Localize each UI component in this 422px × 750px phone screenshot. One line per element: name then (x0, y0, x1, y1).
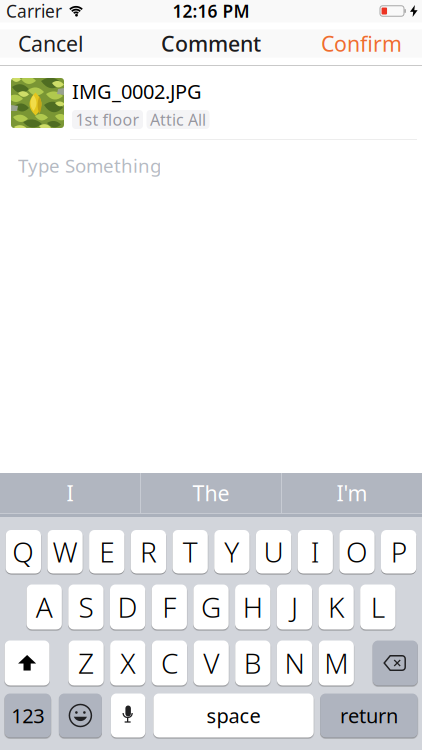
button[interactable]: X (110, 640, 145, 685)
button[interactable]: I (298, 530, 333, 573)
button[interactable]: N (277, 640, 312, 685)
staticText: Z (78, 644, 94, 682)
staticText: M (324, 644, 348, 682)
staticText: I (311, 533, 320, 570)
staticText: O (346, 533, 368, 570)
button[interactable]: T (172, 530, 208, 573)
staticText: K (328, 588, 344, 626)
button[interactable]: Dictation (111, 693, 145, 737)
staticText: C (161, 644, 178, 682)
button[interactable]: F (152, 584, 187, 629)
staticText: H (243, 588, 263, 626)
button[interactable]: space (153, 693, 314, 737)
staticText: I'm (336, 479, 367, 507)
staticText: Comment (161, 29, 261, 58)
button[interactable]: W (47, 530, 83, 573)
staticText: R (140, 533, 157, 570)
button[interactable]: G (193, 584, 229, 629)
button[interactable]: Delete (373, 640, 418, 685)
staticText: Y (224, 533, 239, 570)
button[interactable]: V (193, 640, 229, 685)
button[interactable]: K (318, 584, 354, 629)
staticText: D (118, 588, 138, 626)
button[interactable]: Emoji (59, 693, 102, 737)
button[interactable]: Y (214, 530, 249, 573)
staticText: return (340, 702, 398, 729)
button[interactable]: M (319, 640, 354, 685)
staticText: Q (12, 533, 34, 570)
staticText: 1st floor (75, 109, 139, 130)
staticText: J (291, 588, 298, 626)
staticText: Type Something (18, 153, 161, 178)
staticText: IMG_0002.JPG (72, 78, 202, 105)
staticText: V (203, 644, 219, 682)
staticText: U (263, 533, 283, 570)
staticText: I (66, 479, 73, 507)
staticText: 123 (11, 702, 44, 729)
staticText: T (183, 533, 198, 570)
staticText: G (201, 588, 221, 626)
button[interactable]: J (277, 584, 312, 629)
button[interactable]: Shift (5, 640, 50, 685)
staticText: B (244, 644, 262, 682)
button[interactable]: Q (6, 530, 41, 573)
button[interactable]: U (256, 530, 291, 573)
button[interactable]: A (26, 584, 62, 629)
staticText: S (78, 588, 93, 626)
staticText: W (52, 533, 77, 570)
button[interactable]: Numbers (5, 693, 51, 737)
staticText: X (120, 644, 135, 682)
staticText: A (36, 588, 53, 626)
button[interactable]: L (360, 584, 395, 629)
button[interactable]: I'm (282, 473, 422, 513)
staticText: 12:16 PM (172, 0, 249, 22)
button[interactable]: C (152, 640, 187, 685)
button[interactable]: P (381, 530, 416, 573)
button[interactable]: B (235, 640, 270, 685)
staticText: L (371, 588, 385, 626)
staticText: Attic All (150, 109, 206, 130)
button[interactable]: Cancel (18, 29, 84, 58)
staticText: E (99, 533, 114, 570)
staticText: N (284, 644, 304, 682)
button[interactable]: R (131, 530, 166, 573)
button[interactable]: D (110, 584, 145, 629)
staticText: P (391, 533, 407, 570)
button[interactable]: The (141, 473, 281, 513)
button[interactable]: E (89, 530, 124, 573)
button[interactable]: O (339, 530, 375, 573)
button[interactable]: S (68, 584, 103, 629)
button[interactable]: return (320, 693, 418, 737)
staticText: Cancel (18, 29, 84, 58)
staticText: space (206, 702, 260, 729)
staticText: Carrier (6, 0, 62, 22)
staticText: Confirm (321, 29, 402, 58)
button[interactable]: H (235, 584, 270, 629)
button[interactable]: Z (68, 640, 104, 685)
staticText: The (192, 479, 229, 507)
staticText: F (162, 588, 176, 626)
button[interactable]: Confirm (321, 29, 402, 58)
button[interactable]: I (0, 473, 140, 513)
